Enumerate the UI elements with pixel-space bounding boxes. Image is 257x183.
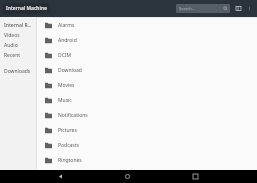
button[interactable]: Podcasts [37,138,257,153]
button[interactable]: Recent [0,50,36,60]
staticText: Internal Machine [6,5,47,12]
button[interactable]: Switch to grid view [234,4,243,13]
button[interactable]: DCIM [37,48,257,63]
button[interactable]: Ringtones [37,153,257,168]
button[interactable]: Pictures [37,123,257,138]
staticText: Recent [4,52,21,59]
staticText: Notifications [58,112,88,119]
button[interactable]: Home [121,170,134,183]
staticText: Movies [58,82,75,89]
button[interactable]: Downloads [0,66,36,76]
button[interactable]: Internal Machine [3,3,50,14]
staticText: DCIM [58,52,72,59]
staticText: Videos [4,32,20,39]
staticText: Downloads [4,68,31,75]
button[interactable]: Back [54,170,67,183]
button[interactable]: More options [245,4,254,13]
staticText: Internal Readdrigan [4,22,34,29]
button[interactable]: Audio [0,40,36,50]
button[interactable]: Music [37,93,257,108]
staticText: Alarms [58,22,75,29]
button[interactable]: Movies [37,78,257,93]
button[interactable]: Internal Readdrigan [0,20,36,30]
button[interactable]: Download [37,63,257,78]
staticText: Download [58,67,82,74]
staticText: Podcasts [58,142,79,149]
staticText: Music [58,97,72,104]
button[interactable]: Alarms [37,18,257,33]
staticText: Search... [179,6,195,11]
button[interactable]: Notifications [37,108,257,123]
staticText: Android [58,37,77,44]
button[interactable]: Recent apps [189,170,202,183]
button[interactable]: Videos [0,30,36,40]
button[interactable]: Search... [176,4,230,13]
staticText: Pictures [58,127,77,134]
staticText: Audio [4,42,18,49]
button[interactable]: Android [37,33,257,48]
staticText: Ringtones [58,157,82,164]
